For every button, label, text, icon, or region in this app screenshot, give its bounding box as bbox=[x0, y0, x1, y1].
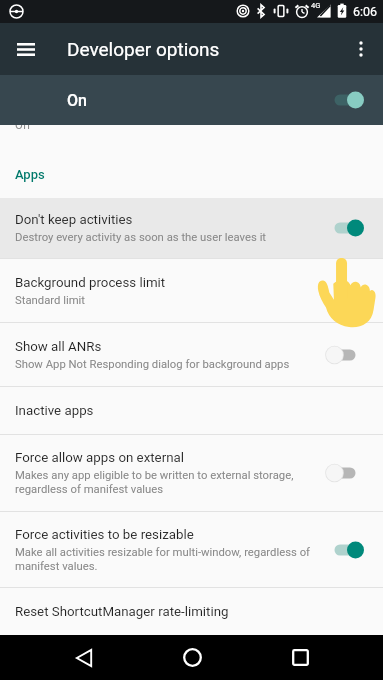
staticText: Force allow apps on external bbox=[15, 450, 184, 466]
staticText: Background process limit bbox=[15, 275, 166, 291]
button[interactable]: Background process limit bbox=[0, 259, 383, 322]
button[interactable]: More options bbox=[340, 28, 382, 70]
button[interactable]: Open navigation drawer bbox=[0, 23, 52, 75]
staticText: Show all ANRs bbox=[15, 339, 102, 355]
staticText: Makes any app eligible to be written to … bbox=[15, 469, 312, 496]
button[interactable]: Force activities to be resizable bbox=[0, 512, 383, 587]
staticText: On bbox=[67, 91, 87, 110]
staticText: Show App Not Responding dialog for backg… bbox=[15, 358, 290, 371]
button[interactable]: Inactive apps bbox=[0, 387, 383, 434]
button[interactable]: Reset ShortcutManager rate-limiting bbox=[0, 588, 383, 635]
staticText: Reset ShortcutManager rate-limiting bbox=[15, 604, 229, 620]
button[interactable]: Force allow apps on external bbox=[0, 435, 383, 511]
staticText: Don't keep activities bbox=[15, 212, 133, 228]
staticText: Destroy every activity as soon as the us… bbox=[15, 231, 267, 244]
button[interactable]: Show all ANRs bbox=[0, 323, 383, 386]
staticText: Apps bbox=[15, 167, 45, 182]
staticText: Make all activities resizable for multi-… bbox=[15, 546, 312, 573]
staticText: Off bbox=[15, 125, 31, 132]
button[interactable]: On bbox=[0, 75, 383, 125]
button[interactable]: Don't keep activities bbox=[0, 198, 383, 258]
button[interactable]: Back bbox=[57, 635, 111, 680]
staticText: 6:06 bbox=[353, 4, 378, 19]
button[interactable]: Home bbox=[165, 635, 219, 680]
button[interactable]: Recent apps bbox=[273, 635, 327, 680]
staticText: Inactive apps bbox=[15, 403, 94, 419]
staticText: 4G bbox=[311, 1, 321, 10]
staticText: Force activities to be resizable bbox=[15, 527, 194, 543]
staticText: Developer options bbox=[67, 38, 220, 60]
staticText: Standard limit bbox=[15, 294, 86, 307]
